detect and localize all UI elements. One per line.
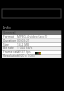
staticText: 14.2 MB — [17, 43, 30, 47]
staticText: Format — [3, 35, 14, 39]
staticText: Bit rate — [3, 46, 14, 50]
staticText: 29.97 fps — [17, 50, 31, 54]
staticText: Duration — [3, 39, 17, 43]
staticText: MPEG-4 video (avc1) — [17, 35, 48, 39]
button[interactable]: Format — [2, 35, 61, 39]
other: Colour sample — [35, 52, 41, 55]
staticText: 1 024 kb/s — [17, 46, 33, 50]
button[interactable]: Preview — [2, 9, 61, 18]
staticText: Size — [3, 43, 9, 47]
button[interactable]: Size — [2, 43, 61, 47]
staticText: 1920 x 1080 — [17, 54, 35, 58]
button[interactable]: Resolution — [2, 54, 61, 58]
button[interactable]: Frame rate — [2, 50, 61, 54]
button[interactable]: Duration — [2, 39, 61, 43]
staticText: General — [3, 31, 16, 35]
button[interactable]: General — [2, 30, 61, 35]
staticText: Frame rate — [3, 50, 20, 54]
staticText: Resolution — [3, 54, 19, 58]
staticText: Info — [3, 25, 11, 30]
staticText: 00:03:21 — [17, 39, 30, 43]
button[interactable]: Bit rate — [2, 46, 61, 50]
